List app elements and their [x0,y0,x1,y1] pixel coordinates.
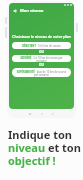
staticText: MODÉRÉ · 5 à 10 km de course par semaine [15,56,68,62]
staticText: Indique ton niveau et ton objectif ! [8,127,81,168]
button[interactable]: DÉBUTANT · 0 à 5 km de course [12,42,71,49]
staticText: EXPÉRIMENTÉ · plus de 10 km de course pa… [15,70,68,76]
staticText: DÉBUTANT · 0 à 5 km de course [22,44,61,48]
staticText: Choisissez le niveau de votre plan [9,34,74,39]
staticText: Mon niveau [20,8,44,13]
button[interactable]: MODÉRÉ · 5 à 10 km de course par semaine [12,55,71,62]
button[interactable]: Retour [11,7,18,14]
staticText: OU [9,50,74,54]
staticText: OU [9,63,74,67]
button[interactable]: EXPÉRIMENTÉ · plus de 10 km de course pa… [12,68,71,77]
